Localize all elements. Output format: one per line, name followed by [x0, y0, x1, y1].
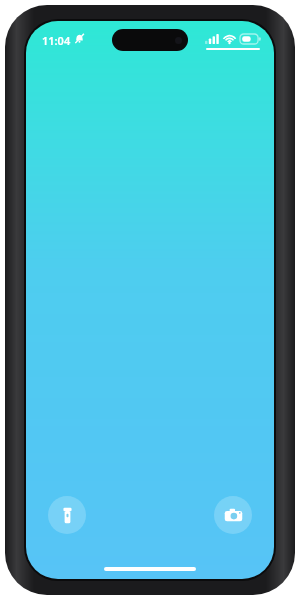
button[interactable]: Flashlight [48, 496, 86, 534]
button[interactable]: Camera [214, 496, 252, 534]
staticText: 11:04 [42, 33, 71, 48]
